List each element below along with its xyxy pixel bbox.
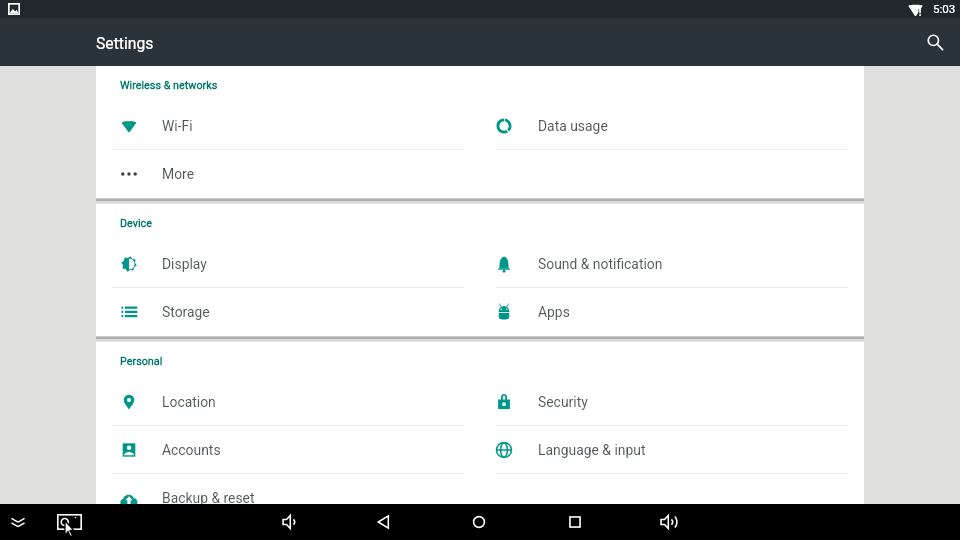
staticText: Display [162,256,207,272]
button[interactable]: Backup & reset [96,474,480,522]
staticText: More [162,166,194,182]
staticText: 5:03 [933,2,956,16]
button[interactable]: Screenshot [52,505,86,539]
staticText: Personal [120,355,163,368]
button[interactable]: Search [917,24,953,60]
button[interactable]: Accounts [96,426,480,474]
button[interactable]: Volume up [653,506,685,538]
staticText: Security [538,394,588,410]
staticText: Apps [538,304,570,320]
button[interactable]: Collapse [3,507,33,537]
button[interactable]: Recents [559,506,591,538]
staticText: Sound & notification [538,256,663,272]
button[interactable]: Back [368,506,400,538]
button[interactable]: Location [96,378,480,426]
button[interactable]: Language & input [480,426,864,474]
button[interactable]: Home [463,506,495,538]
staticText: Accounts [162,442,221,458]
staticText: Wi-Fi [162,118,193,134]
button[interactable]: Display [96,240,480,288]
button[interactable]: Security [480,378,864,426]
button[interactable]: Apps [480,288,864,336]
staticText: Location [162,394,216,410]
button[interactable]: Sound & notification [480,240,864,288]
staticText: Wireless & networks [120,79,218,92]
staticText: Settings [96,34,154,52]
staticText: Device [120,217,152,230]
button[interactable]: Volume down [275,506,307,538]
staticText: Language & input [538,442,646,458]
button[interactable]: Wi-Fi [96,102,480,150]
button[interactable]: More [96,150,480,198]
staticText: Data usage [538,118,608,134]
staticText: Backup & reset [162,490,255,506]
staticText: Storage [162,304,210,320]
button[interactable]: Data usage [480,102,864,150]
button[interactable]: Storage [96,288,480,336]
